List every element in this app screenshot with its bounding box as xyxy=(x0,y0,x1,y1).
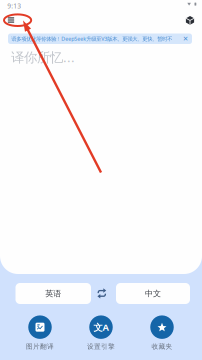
staticText: 设置引擎 xyxy=(87,342,115,351)
staticText: ✕ xyxy=(183,35,189,43)
staticText: 收藏夹 xyxy=(151,342,172,351)
staticText: 文A xyxy=(93,321,108,333)
button[interactable]: Menu xyxy=(4,13,17,26)
staticText: 9:13 xyxy=(7,2,21,10)
button[interactable]: Swap languages xyxy=(97,289,107,297)
staticText: 中文 xyxy=(145,289,161,298)
button[interactable]: 收藏夹 xyxy=(134,315,190,351)
staticText: 译你所忆... xyxy=(11,48,75,66)
button[interactable]: 中文 xyxy=(116,283,190,304)
button[interactable]: Models xyxy=(186,16,194,25)
staticText: 图片翻译 xyxy=(26,342,54,351)
staticText: 英语 xyxy=(45,289,61,298)
button[interactable]: 文A xyxy=(73,315,129,351)
button[interactable]: 英语 xyxy=(15,283,91,304)
button[interactable]: 语多项优化等你体验！DeepSeek升级至V3版本。更强大、更快、暂时不 xyxy=(8,33,192,44)
button[interactable]: 图片翻译 xyxy=(12,315,68,351)
staticText: 语多项优化等你体验！DeepSeek升级至V3版本。更强大、更快、暂时不 xyxy=(11,35,172,42)
